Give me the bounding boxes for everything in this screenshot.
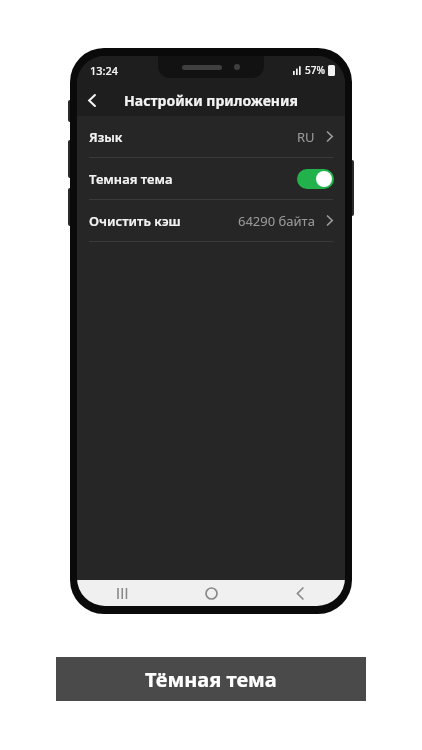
- staticText: Настройки приложения: [124, 91, 298, 110]
- button[interactable]: Тёмная тема: [56, 657, 366, 701]
- button[interactable]: Темная тема: [77, 158, 345, 199]
- staticText: 57%: [305, 63, 325, 77]
- staticText: Темная тема: [89, 170, 173, 188]
- button[interactable]: Последние приложения: [97, 580, 147, 606]
- staticText: RU: [297, 128, 315, 146]
- staticText: 13:24: [90, 63, 119, 78]
- staticText: Язык: [89, 128, 123, 146]
- button[interactable]: Главный экран: [186, 580, 236, 606]
- button[interactable]: Язык: [77, 116, 345, 157]
- button[interactable]: Очистить кэш: [77, 200, 345, 241]
- button[interactable]: Назад: [77, 85, 107, 115]
- button[interactable]: Назад: [275, 580, 325, 606]
- staticText: 64290 байта: [238, 212, 315, 230]
- button[interactable]: Темная тема включена: [297, 169, 334, 189]
- staticText: Очистить кэш: [89, 212, 181, 230]
- staticText: Тёмная тема: [145, 666, 277, 693]
